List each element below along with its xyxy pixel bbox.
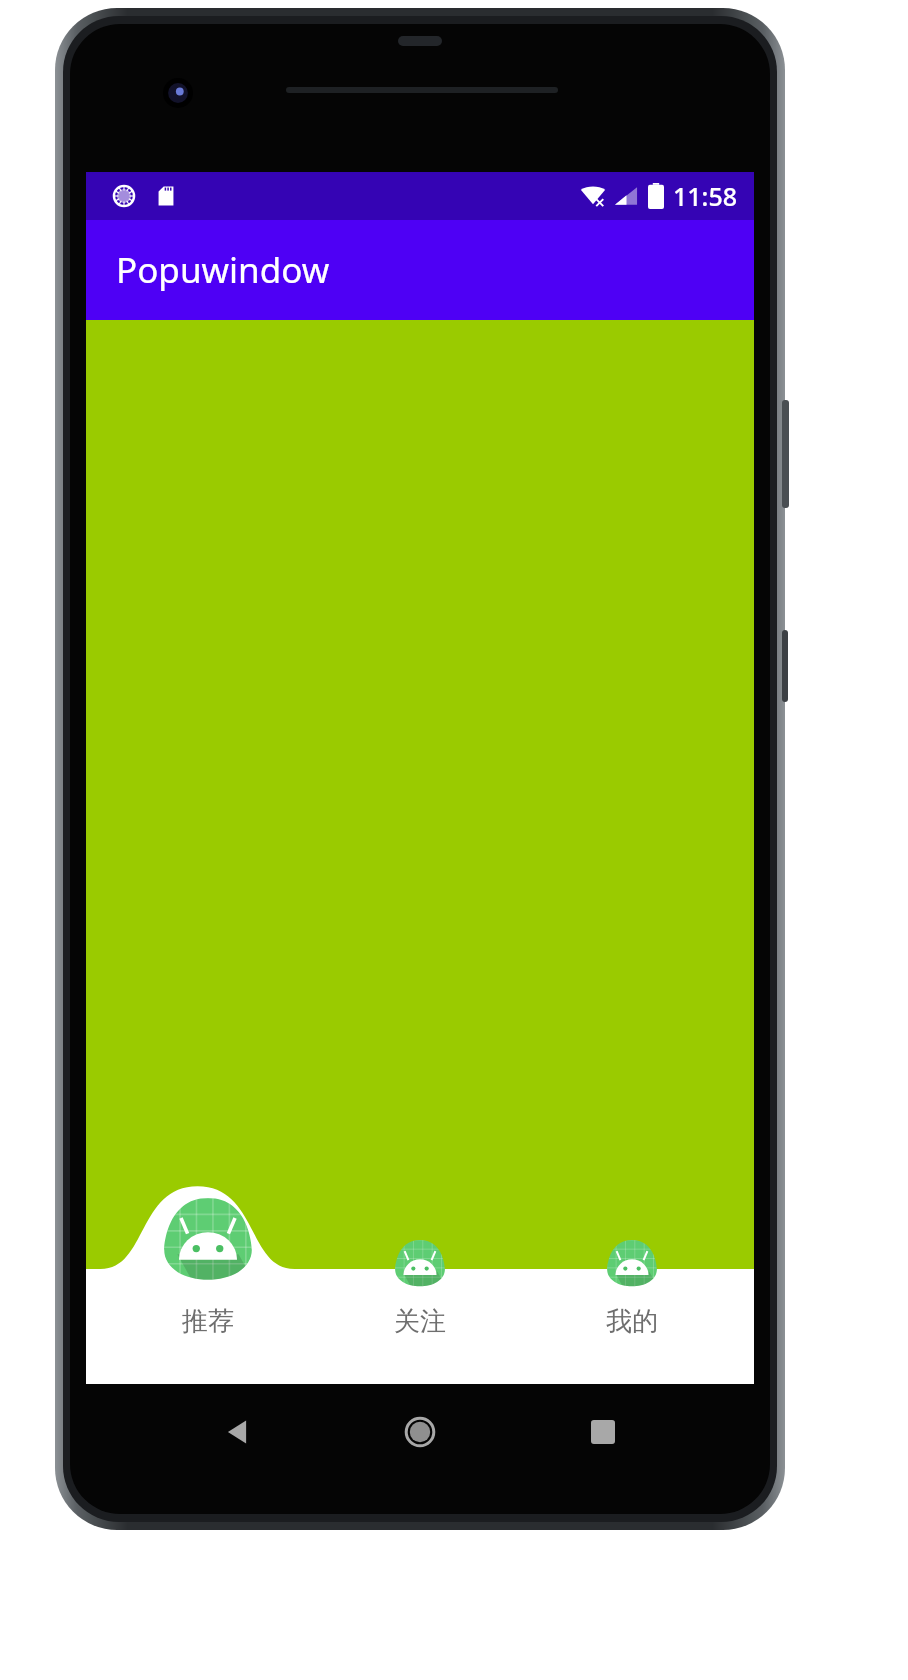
button[interactable]: 推荐 xyxy=(118,1193,298,1384)
button[interactable]: Home xyxy=(388,1400,452,1464)
button[interactable]: 我的 xyxy=(542,1237,722,1384)
staticText: 11:58 xyxy=(673,179,738,213)
button[interactable]: Recent apps xyxy=(571,1400,635,1464)
staticText: 关注 xyxy=(394,1305,446,1338)
button[interactable]: 关注 xyxy=(330,1237,510,1384)
button[interactable]: Back xyxy=(205,1400,269,1464)
staticText: 我的 xyxy=(606,1305,658,1338)
staticText: Popuwindow xyxy=(116,246,330,294)
staticText: 推荐 xyxy=(182,1305,234,1338)
